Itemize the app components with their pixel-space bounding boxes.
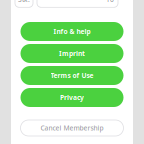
button[interactable]: Privacy <box>20 88 123 107</box>
staticText: Stk. <box>18 0 30 4</box>
staticText: Imprint <box>59 49 85 58</box>
staticText: Cancel Membership <box>40 124 103 132</box>
button[interactable]: Info & help <box>20 22 123 41</box>
staticText: Privacy <box>60 93 84 102</box>
button[interactable]: Terms of Use <box>20 66 123 85</box>
staticText: 10 <box>106 0 114 4</box>
staticText: Terms of Use <box>50 71 93 80</box>
button[interactable]: Cancel Membership <box>20 120 123 136</box>
button[interactable]: Imprint <box>20 44 123 63</box>
staticText: Info & help <box>53 27 90 36</box>
